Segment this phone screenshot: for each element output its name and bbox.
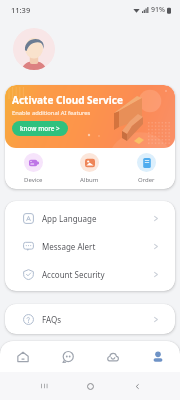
button[interactable]: Account Security (5, 260, 175, 288)
button[interactable]: Device (5, 153, 61, 184)
button[interactable]: Message Alert (5, 232, 175, 260)
button[interactable]: Profile (135, 341, 180, 372)
staticText: Account Security (42, 269, 105, 280)
button[interactable]: Activate Cloud Service (5, 85, 175, 148)
button[interactable]: FAQs (5, 305, 175, 333)
staticText: App Language (42, 213, 97, 224)
staticText: Album (80, 176, 99, 184)
staticText: know more > (20, 124, 60, 133)
button[interactable]: Support (45, 341, 90, 372)
button[interactable]: know more > (12, 121, 68, 136)
button[interactable]: Album (61, 153, 118, 184)
staticText: Enable additional AI features (12, 109, 91, 117)
button[interactable]: Profile avatar (13, 28, 55, 70)
button[interactable]: App Language (5, 204, 175, 232)
staticText: Activate Cloud Service (12, 93, 123, 107)
staticText: Message Alert (42, 241, 96, 252)
button[interactable]: Cloud (90, 341, 135, 372)
staticText: Order (138, 176, 155, 184)
staticText: 91% (151, 5, 165, 15)
button[interactable]: Home (0, 341, 45, 372)
button[interactable]: Order (118, 153, 175, 184)
staticText: 11:39 (11, 5, 31, 15)
staticText: Device (24, 176, 43, 184)
staticText: FAQs (42, 314, 62, 325)
